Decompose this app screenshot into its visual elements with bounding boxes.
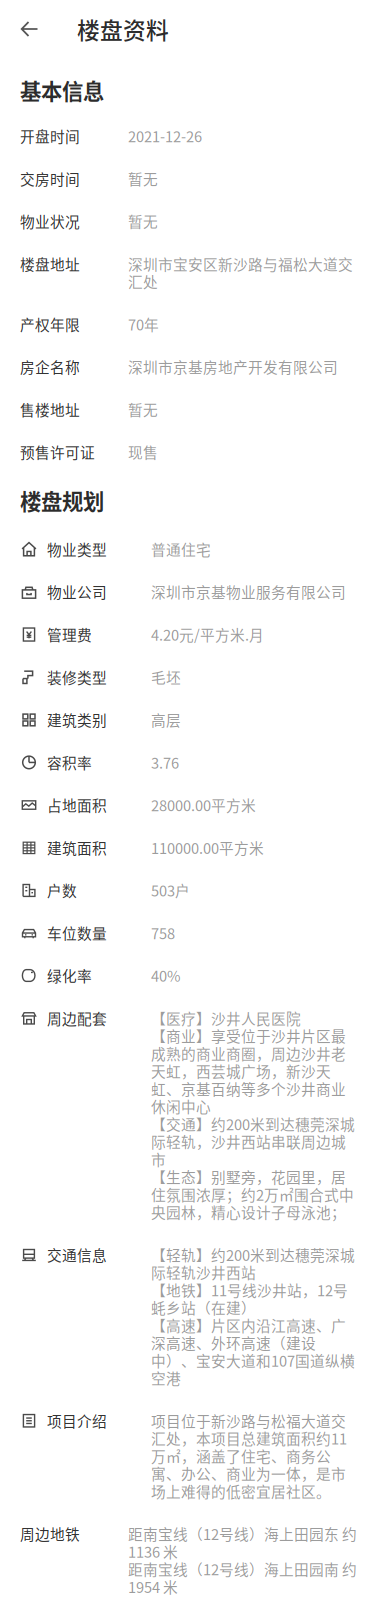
button[interactable]: 楼盘地址 <box>0 242 388 303</box>
staticText: 交房时间 <box>20 170 80 187</box>
staticText: 开盘时间 <box>20 127 80 145</box>
button[interactable]: 户数 <box>0 869 388 911</box>
staticText: 距南宝线（12号线）海上田园东 约1136 米 距南宝线（12号线）海上田园南 … <box>128 1525 357 1595</box>
button[interactable]: 房企名称 <box>0 345 388 388</box>
staticText: 深圳市宝安区新沙路与福松大道交汇处 <box>128 255 353 290</box>
staticText: 110000.00平方米 <box>151 839 264 856</box>
staticText: 绿化率 <box>47 967 92 984</box>
staticText: 车位数量 <box>47 924 107 941</box>
staticText: 预售许可证 <box>20 443 95 461</box>
button[interactable]: 绿化率 <box>0 954 388 997</box>
staticText: 装修类型 <box>47 668 107 686</box>
staticText: 产权年限 <box>20 315 80 333</box>
staticText: 40% <box>151 967 181 984</box>
staticText: 暂无 <box>128 400 158 418</box>
staticText: 3.76 <box>151 753 179 771</box>
staticText: 楼盘资料 <box>77 15 169 43</box>
button[interactable]: 周边地铁 <box>0 1512 388 1600</box>
staticText: 普通住宅 <box>151 540 211 558</box>
button[interactable]: 预售许可证 <box>0 431 388 473</box>
staticText: 基本信息 <box>20 77 104 104</box>
staticText: 2021-12-26 <box>128 127 202 145</box>
button[interactable]: 物业公司 <box>0 570 388 613</box>
staticText: 现售 <box>128 443 158 461</box>
button[interactable]: 交通信息 <box>0 1233 388 1399</box>
button[interactable]: 产权年限 <box>0 303 388 345</box>
staticText: 楼盘地址 <box>20 255 80 272</box>
staticText: 售楼地址 <box>20 400 80 418</box>
button[interactable]: 容积率 <box>0 741 388 783</box>
staticText: 【医疗】沙井人民医院 【商业】享受位于沙井片区最成熟的商业商圈，周边沙井老天虹，… <box>151 1009 355 1221</box>
staticText: 503户 <box>151 881 190 899</box>
staticText: 暂无 <box>128 170 158 187</box>
staticText: 项目位于新沙路与松福大道交汇处，本项目总建筑面积约11万㎡，涵盖了住宅、商务公寓… <box>151 1412 347 1500</box>
button[interactable]: 项目介绍 <box>0 1399 388 1512</box>
staticText: 物业状况 <box>20 212 80 230</box>
staticText: 物业类型 <box>47 540 107 558</box>
button[interactable]: 管理费 <box>0 613 388 656</box>
button[interactable]: 占地面积 <box>0 783 388 826</box>
button[interactable]: 车位数量 <box>0 911 388 954</box>
staticText: 周边配套 <box>47 1009 107 1027</box>
staticText: 容积率 <box>47 753 92 771</box>
staticText: 28000.00平方米 <box>151 796 256 814</box>
staticText: 楼盘规划 <box>20 487 104 514</box>
staticText: 暂无 <box>128 212 158 230</box>
button[interactable]: 建筑类别 <box>0 698 388 741</box>
button[interactable]: 物业状况 <box>0 200 388 242</box>
staticText: 周边地铁 <box>20 1525 80 1542</box>
button[interactable]: 开盘时间 <box>0 115 388 157</box>
staticText: 深圳市京基物业服务有限公司 <box>151 583 346 600</box>
staticText: 建筑面积 <box>47 839 107 856</box>
staticText: 【轻轨】约200米到达穗莞深城际轻轨沙井西站 【地铁】11号线沙井站，12号蚝乡… <box>151 1246 355 1387</box>
staticText: 建筑类别 <box>47 711 107 728</box>
staticText: 70年 <box>128 315 159 333</box>
staticText: 毛坯 <box>151 668 181 686</box>
button[interactable]: 装修类型 <box>0 656 388 698</box>
button[interactable]: 返回 <box>0 0 58 58</box>
button[interactable]: 售楼地址 <box>0 388 388 431</box>
button[interactable]: 周边配套 <box>0 997 388 1233</box>
staticText: 户数 <box>47 881 77 899</box>
staticText: 管理费 <box>47 625 92 643</box>
button[interactable]: 建筑面积 <box>0 826 388 869</box>
staticText: 占地面积 <box>47 796 107 814</box>
button[interactable]: 物业类型 <box>0 528 388 570</box>
button[interactable]: 交房时间 <box>0 157 388 200</box>
staticText: 758 <box>151 924 175 941</box>
staticText: 房企名称 <box>20 358 80 375</box>
staticText: 交通信息 <box>47 1246 107 1263</box>
staticText: 4.20元/平方米.月 <box>151 625 264 643</box>
staticText: 深圳市京基房地产开发有限公司 <box>128 358 338 375</box>
staticText: 项目介绍 <box>47 1412 107 1429</box>
staticText: 高层 <box>151 711 181 728</box>
staticText: 物业公司 <box>47 583 107 600</box>
